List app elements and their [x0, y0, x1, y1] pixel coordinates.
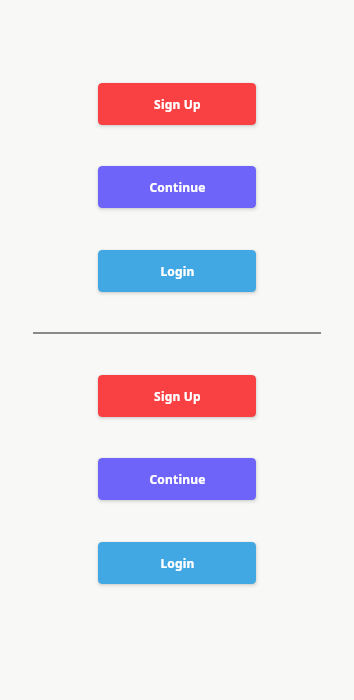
button[interactable]: Sign Up: [98, 375, 256, 417]
button[interactable]: Sign Up: [98, 83, 256, 125]
button[interactable]: Login: [98, 250, 256, 292]
staticText: Login: [160, 555, 195, 571]
staticText: Login: [160, 263, 195, 279]
staticText: Continue: [149, 179, 206, 195]
button[interactable]: Continue: [98, 458, 256, 500]
button[interactable]: Continue: [98, 166, 256, 208]
button[interactable]: Login: [98, 542, 256, 584]
staticText: Sign Up: [154, 96, 201, 112]
staticText: Continue: [149, 471, 206, 487]
staticText: Sign Up: [154, 388, 201, 404]
